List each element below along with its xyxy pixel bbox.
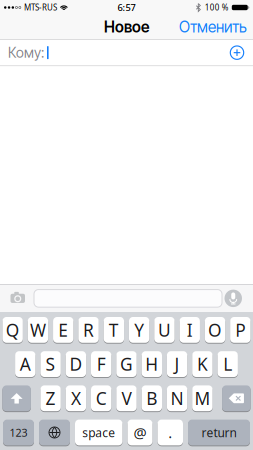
button[interactable]: Numbers (3, 420, 34, 445)
staticText: Новое (104, 18, 149, 36)
button[interactable]: S (40, 351, 61, 377)
button[interactable]: Add Contact (230, 46, 244, 60)
button[interactable]: . (157, 420, 183, 445)
button[interactable]: Return (188, 420, 250, 445)
button[interactable]: Next Keyboard (39, 420, 70, 445)
staticText: H (145, 353, 158, 376)
button[interactable]: @ (127, 420, 152, 445)
staticText: Z (46, 387, 56, 410)
button[interactable]: space (75, 420, 122, 445)
staticText: X (71, 387, 81, 410)
button[interactable]: R (78, 317, 99, 343)
button[interactable]: E (53, 317, 73, 343)
button[interactable]: Z (40, 385, 61, 411)
staticText: I (187, 318, 193, 341)
staticText: M (194, 387, 210, 410)
button[interactable]: T (104, 317, 124, 343)
staticText: T (109, 318, 119, 341)
staticText: E (58, 318, 68, 341)
staticText: F (97, 353, 106, 376)
staticText: B (146, 387, 157, 410)
staticText: S (46, 353, 56, 376)
button[interactable]: J (167, 351, 187, 377)
staticText: space (82, 424, 115, 440)
staticText: L (223, 353, 232, 376)
button[interactable]: L (217, 351, 238, 377)
staticText: Отменить (179, 18, 247, 36)
button[interactable]: C (91, 385, 111, 411)
button[interactable]: X (66, 385, 86, 411)
staticText: . (168, 423, 172, 442)
staticText: C (96, 387, 107, 410)
button[interactable]: N (167, 385, 187, 411)
button[interactable]: B (142, 385, 162, 411)
button[interactable]: Delete (222, 385, 251, 411)
button[interactable]: M (192, 385, 213, 411)
staticText: G (120, 353, 133, 376)
staticText: W (30, 318, 46, 341)
button[interactable]: I (179, 317, 200, 343)
staticText: Q (6, 318, 20, 341)
staticText: J (175, 353, 180, 376)
staticText: 100 % (205, 2, 229, 13)
button[interactable]: Q (2, 317, 23, 343)
button[interactable]: Camera (0, 293, 25, 304)
staticText: V (121, 387, 131, 410)
button[interactable]: To (0, 44, 230, 61)
button[interactable]: V (116, 385, 137, 411)
staticText: U (158, 318, 171, 341)
staticText: P (235, 318, 245, 341)
staticText: Y (134, 318, 144, 341)
staticText: Кому: (8, 44, 44, 61)
staticText: A (20, 353, 31, 376)
staticText: D (69, 353, 82, 376)
button[interactable]: A (15, 351, 35, 377)
staticText: MTS-RUS (24, 2, 57, 13)
button[interactable]: P (230, 317, 250, 343)
button[interactable]: F (91, 351, 111, 377)
button[interactable]: G (116, 351, 137, 377)
staticText: @ (133, 423, 146, 442)
button[interactable]: Shift (2, 385, 31, 411)
button[interactable]: D (66, 351, 86, 377)
button[interactable]: Message field (25, 290, 222, 307)
button[interactable]: K (192, 351, 213, 377)
staticText: 123 (9, 425, 27, 440)
button[interactable]: W (28, 317, 48, 343)
button[interactable]: O (205, 317, 225, 343)
staticText: return (201, 424, 236, 440)
button[interactable]: Отменить (179, 18, 247, 36)
button[interactable]: U (154, 317, 175, 343)
button[interactable]: Record Audio Message (224, 290, 242, 307)
button[interactable]: Y (129, 317, 149, 343)
staticText: N (171, 387, 184, 410)
staticText: R (83, 318, 94, 341)
button[interactable]: H (142, 351, 162, 377)
staticText: 6:57 (117, 1, 135, 14)
staticText: K (197, 353, 208, 376)
staticText: O (208, 318, 222, 341)
